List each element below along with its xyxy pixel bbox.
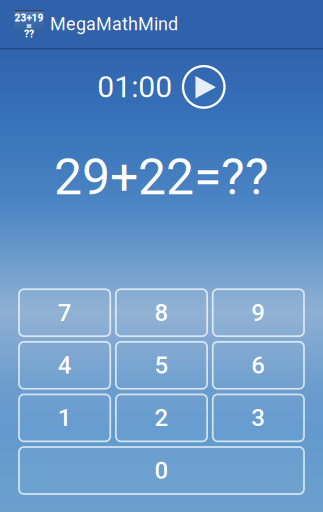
staticText: 6 [251, 351, 265, 379]
staticText: 7 [58, 299, 72, 327]
staticText: 0 [154, 456, 168, 484]
button[interactable]: 6 [213, 342, 304, 389]
staticText: 1 [58, 404, 72, 432]
button[interactable]: Start [182, 65, 226, 109]
staticText: 5 [154, 351, 168, 379]
staticText: = [26, 20, 32, 32]
staticText: 01:00 [97, 69, 172, 104]
button[interactable]: 5 [116, 342, 207, 389]
staticText: 23+19 [14, 12, 43, 24]
button[interactable]: 1 [19, 394, 110, 441]
staticText: 3 [251, 404, 265, 432]
staticText: 4 [58, 351, 72, 379]
staticText: 8 [154, 299, 168, 327]
staticText: ?? [24, 28, 34, 40]
button[interactable]: 2 [116, 394, 207, 441]
staticText: 2 [154, 404, 168, 432]
button[interactable]: 0 [19, 447, 304, 494]
button[interactable]: 4 [19, 342, 110, 389]
button[interactable]: 7 [19, 289, 110, 336]
button[interactable]: 3 [213, 394, 304, 441]
staticText: 29+22=?? [54, 148, 269, 206]
staticText: MegaMathMind [50, 13, 178, 35]
button[interactable]: 8 [116, 289, 207, 336]
staticText: 9 [251, 299, 265, 327]
button[interactable]: 9 [213, 289, 304, 336]
